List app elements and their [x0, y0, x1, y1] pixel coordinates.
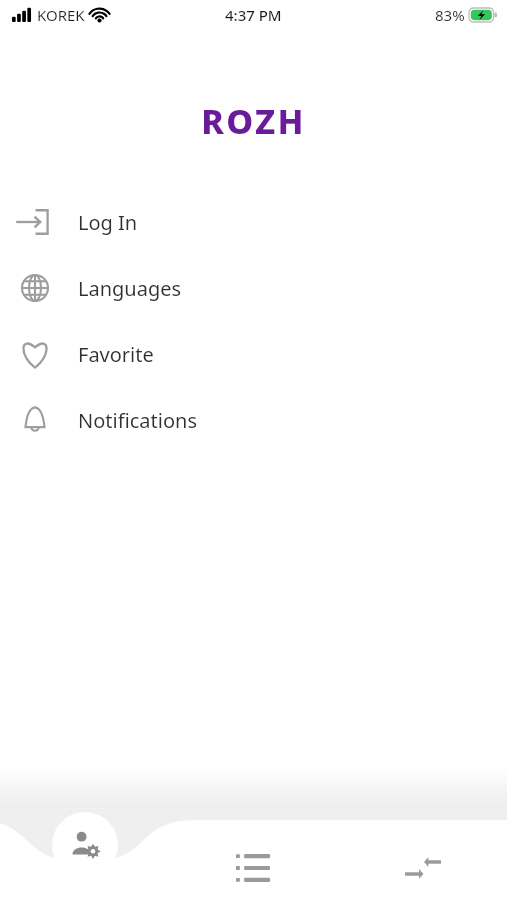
- staticText: Languages: [78, 275, 182, 302]
- staticText: 83%: [435, 5, 465, 25]
- staticText: Favorite: [78, 341, 154, 368]
- button[interactable]: Languages: [0, 255, 507, 321]
- button[interactable]: Favorite: [0, 321, 507, 387]
- button[interactable]: List: [210, 842, 296, 894]
- button[interactable]: Account settings: [52, 812, 118, 878]
- button[interactable]: Collapse: [380, 842, 466, 894]
- staticText: Log In: [78, 209, 138, 236]
- staticText: Notifications: [78, 407, 197, 434]
- staticText: KOREK: [37, 5, 85, 25]
- staticText: 4:37 PM: [225, 5, 282, 25]
- staticText: ROZH: [201, 98, 306, 144]
- button[interactable]: Notifications: [0, 387, 507, 453]
- button[interactable]: Log In: [0, 189, 507, 255]
